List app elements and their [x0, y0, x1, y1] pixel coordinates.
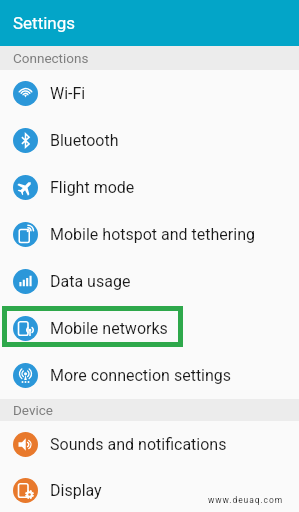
staticText: Settings — [13, 13, 76, 33]
button[interactable]: Sounds and notifications — [0, 421, 299, 468]
staticText: Data usage — [50, 272, 131, 291]
staticText: Mobile networks — [50, 319, 168, 338]
button[interactable]: Data usage — [0, 258, 299, 305]
button[interactable]: Mobile networks — [0, 305, 299, 352]
button[interactable]: Display — [0, 468, 299, 512]
staticText: Device — [13, 402, 53, 418]
staticText: Bluetooth — [50, 131, 119, 150]
staticText: Connections — [13, 50, 89, 66]
staticText: Sounds and notifications — [50, 435, 227, 454]
staticText: More connection settings — [50, 366, 232, 385]
button[interactable]: Flight mode — [0, 164, 299, 211]
staticText: Mobile hotspot and tethering — [50, 225, 255, 244]
button[interactable]: More connection settings — [0, 352, 299, 399]
button[interactable]: Bluetooth — [0, 117, 299, 164]
button[interactable]: Mobile hotspot and tethering — [0, 211, 299, 258]
staticText: www.deuaq.com — [208, 495, 284, 505]
staticText: Display — [50, 481, 102, 500]
staticText: Wi-Fi — [50, 84, 86, 103]
button[interactable]: Wi-Fi — [0, 70, 299, 117]
staticText: Flight mode — [50, 178, 135, 197]
